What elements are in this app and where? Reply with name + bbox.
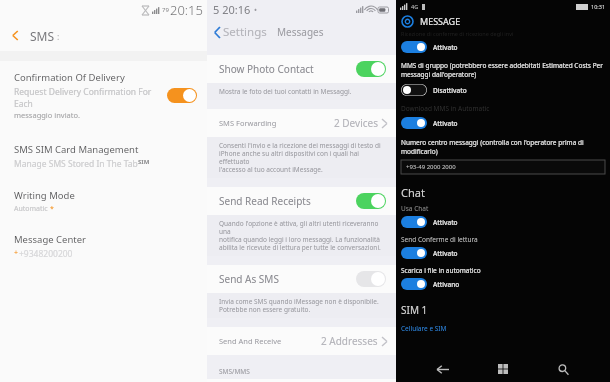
button[interactable]: Toggle	[396, 215, 462, 229]
staticText: Numero centro messaggi (controlla con l'…	[401, 138, 584, 156]
button[interactable]: Back	[430, 356, 456, 382]
button[interactable]: Confirmation Of Delivery	[0, 65, 207, 126]
staticText: MMS di gruppo (potrebbero essere addebit…	[401, 61, 603, 79]
staticText: SMS	[30, 28, 55, 44]
button[interactable]: Toggle	[396, 40, 462, 54]
staticText: Send As SMS	[219, 272, 356, 286]
button[interactable]: Writing Mode	[0, 186, 207, 217]
button[interactable]: Start	[490, 356, 516, 382]
staticText: 5 20:16	[213, 2, 251, 17]
button[interactable]: SMS Forwarding	[207, 109, 396, 137]
staticText: Usa Chat	[401, 204, 429, 213]
staticText: Attivato	[433, 119, 458, 128]
button[interactable]: Search	[550, 356, 576, 382]
staticText: 4G	[411, 3, 419, 10]
staticText: Request Delivery Confirmation For Each	[14, 86, 161, 110]
button[interactable]: Send As SMS	[207, 265, 396, 293]
staticText: Confirmation Of Delivery	[14, 71, 125, 84]
button[interactable]: Send Read Receipts	[207, 187, 396, 215]
button[interactable]: Toggle	[396, 83, 471, 97]
button[interactable]: Message Center	[0, 230, 207, 263]
staticText: 10:31	[591, 3, 606, 10]
other: Back	[11, 31, 20, 40]
other: Toggle	[401, 41, 427, 53]
staticText: Send Conferme di lettura	[401, 235, 478, 244]
staticText: Automatic	[14, 204, 48, 214]
button[interactable]: Send And Receive	[207, 327, 396, 355]
button[interactable]: Toggle	[396, 277, 464, 291]
staticText: Messages	[277, 25, 324, 39]
staticText: SMS/MMS	[219, 367, 250, 376]
other: Settings	[402, 16, 413, 27]
other: Toggle	[401, 117, 427, 129]
staticText: SIM	[138, 158, 150, 166]
staticText: 79	[162, 6, 169, 14]
staticText: Writing Mode	[14, 189, 75, 202]
button[interactable]: SMS SIM Card Management	[0, 140, 207, 173]
staticText: SMS SIM Card Management	[14, 143, 139, 156]
staticText: Attivato	[433, 43, 458, 52]
other: Toggle	[401, 247, 427, 259]
staticText: Settings	[223, 24, 267, 40]
staticText: Message Center	[14, 233, 87, 246]
staticText: +93-49 2000 2000	[406, 163, 456, 171]
button[interactable]: Toggle	[167, 88, 197, 103]
staticText: :	[57, 30, 60, 42]
staticText: Download MMS in Automatic	[401, 104, 490, 113]
staticText: +	[14, 248, 19, 258]
staticText: Invia come SMS quando iMessage non è dis…	[219, 297, 379, 314]
staticText: Consenti l'invio e la ricezione dei mess…	[219, 141, 388, 174]
staticText: Send Read Receipts	[219, 194, 356, 208]
button[interactable]: Toggle	[396, 116, 462, 130]
staticText: Cellulare e SIM	[401, 324, 447, 333]
staticText: Mostra le foto dei tuoi contatti in Mess…	[219, 87, 352, 96]
other: Toggle	[401, 216, 427, 228]
staticText: Chat	[401, 185, 425, 200]
staticText: Attivano	[433, 280, 460, 289]
button[interactable]: Back	[207, 21, 271, 43]
button[interactable]: Cellulare e SIM	[396, 323, 447, 334]
other: Back	[214, 27, 221, 38]
button[interactable]: +93-49 2000 2000	[401, 160, 605, 174]
button[interactable]: Toggle	[356, 61, 386, 77]
staticText: +9348200200	[19, 248, 73, 260]
staticText: Attivato	[433, 218, 458, 227]
button[interactable]: Back	[0, 20, 207, 51]
button[interactable]: Toggle	[356, 193, 386, 209]
other: Toggle	[401, 278, 427, 290]
staticText: •	[254, 4, 258, 15]
button[interactable]: Toggle	[396, 246, 462, 260]
button[interactable]: Toggle	[356, 271, 386, 287]
staticText: Attivato	[433, 249, 458, 258]
staticText: Quando l'opzione è attiva, gli altri ute…	[219, 219, 388, 252]
button[interactable]: Show Photo Contact	[207, 55, 396, 83]
other: Toggle	[401, 84, 427, 96]
staticText: *	[50, 204, 54, 214]
staticText: Manage SMS Stored In The Tab	[14, 158, 138, 170]
staticText: SIM 1	[401, 303, 428, 317]
staticText: MESSAGE	[420, 15, 461, 27]
staticText: 2 Addresses	[321, 334, 378, 348]
staticText: 20:15	[170, 1, 203, 19]
staticText: Send And Receive	[219, 336, 321, 346]
staticText: Ricezione di conferme di ricezione degli…	[401, 30, 514, 37]
staticText: Disattivato	[433, 86, 467, 95]
staticText: 2 Devices	[334, 116, 378, 130]
staticText: Show Photo Contact	[219, 62, 356, 76]
staticText: messaggio inviato.	[14, 110, 81, 120]
staticText: Scarica i file in automatico	[401, 266, 481, 275]
staticText: SMS Forwarding	[219, 118, 334, 128]
